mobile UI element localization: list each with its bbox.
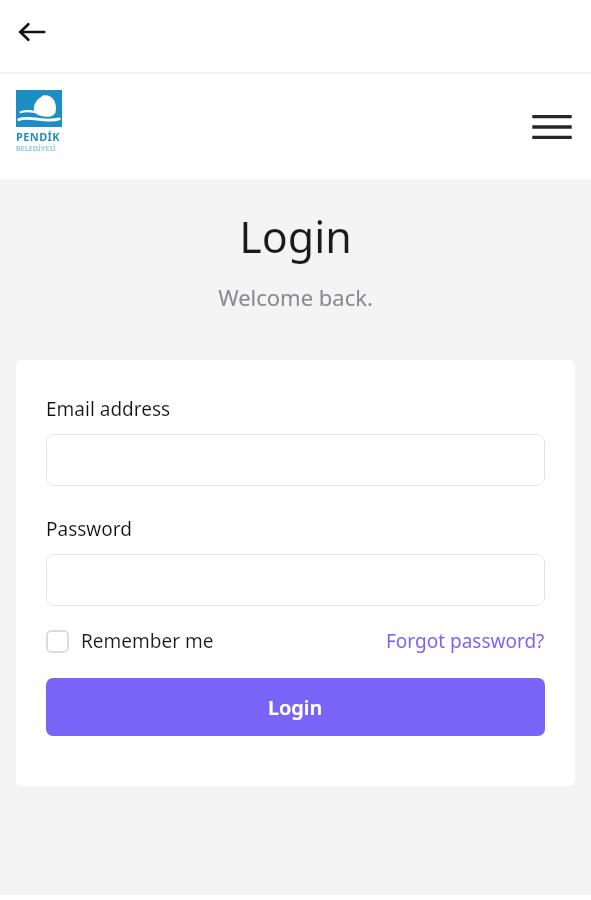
staticText: BELEDİYESİ bbox=[16, 144, 57, 154]
button[interactable]: Remember me bbox=[46, 628, 214, 654]
staticText: Welcome back. bbox=[0, 282, 591, 312]
button[interactable]: Forgot password? bbox=[386, 628, 545, 654]
button[interactable]: Email address input bbox=[46, 434, 545, 486]
button[interactable]: Pendik Belediyesi logo bbox=[16, 90, 68, 160]
staticText: Email address bbox=[46, 396, 171, 422]
staticText: PENDİK bbox=[16, 129, 60, 144]
button[interactable]: Login bbox=[46, 678, 545, 736]
staticText: Login bbox=[268, 694, 323, 721]
button[interactable]: Back bbox=[10, 10, 54, 54]
button[interactable]: Menu bbox=[527, 102, 577, 152]
staticText: Password bbox=[46, 516, 132, 542]
staticText: Login bbox=[0, 207, 591, 266]
button[interactable]: Password input bbox=[46, 554, 545, 606]
staticText: Remember me bbox=[81, 628, 214, 654]
staticText: Forgot password? bbox=[386, 628, 545, 654]
